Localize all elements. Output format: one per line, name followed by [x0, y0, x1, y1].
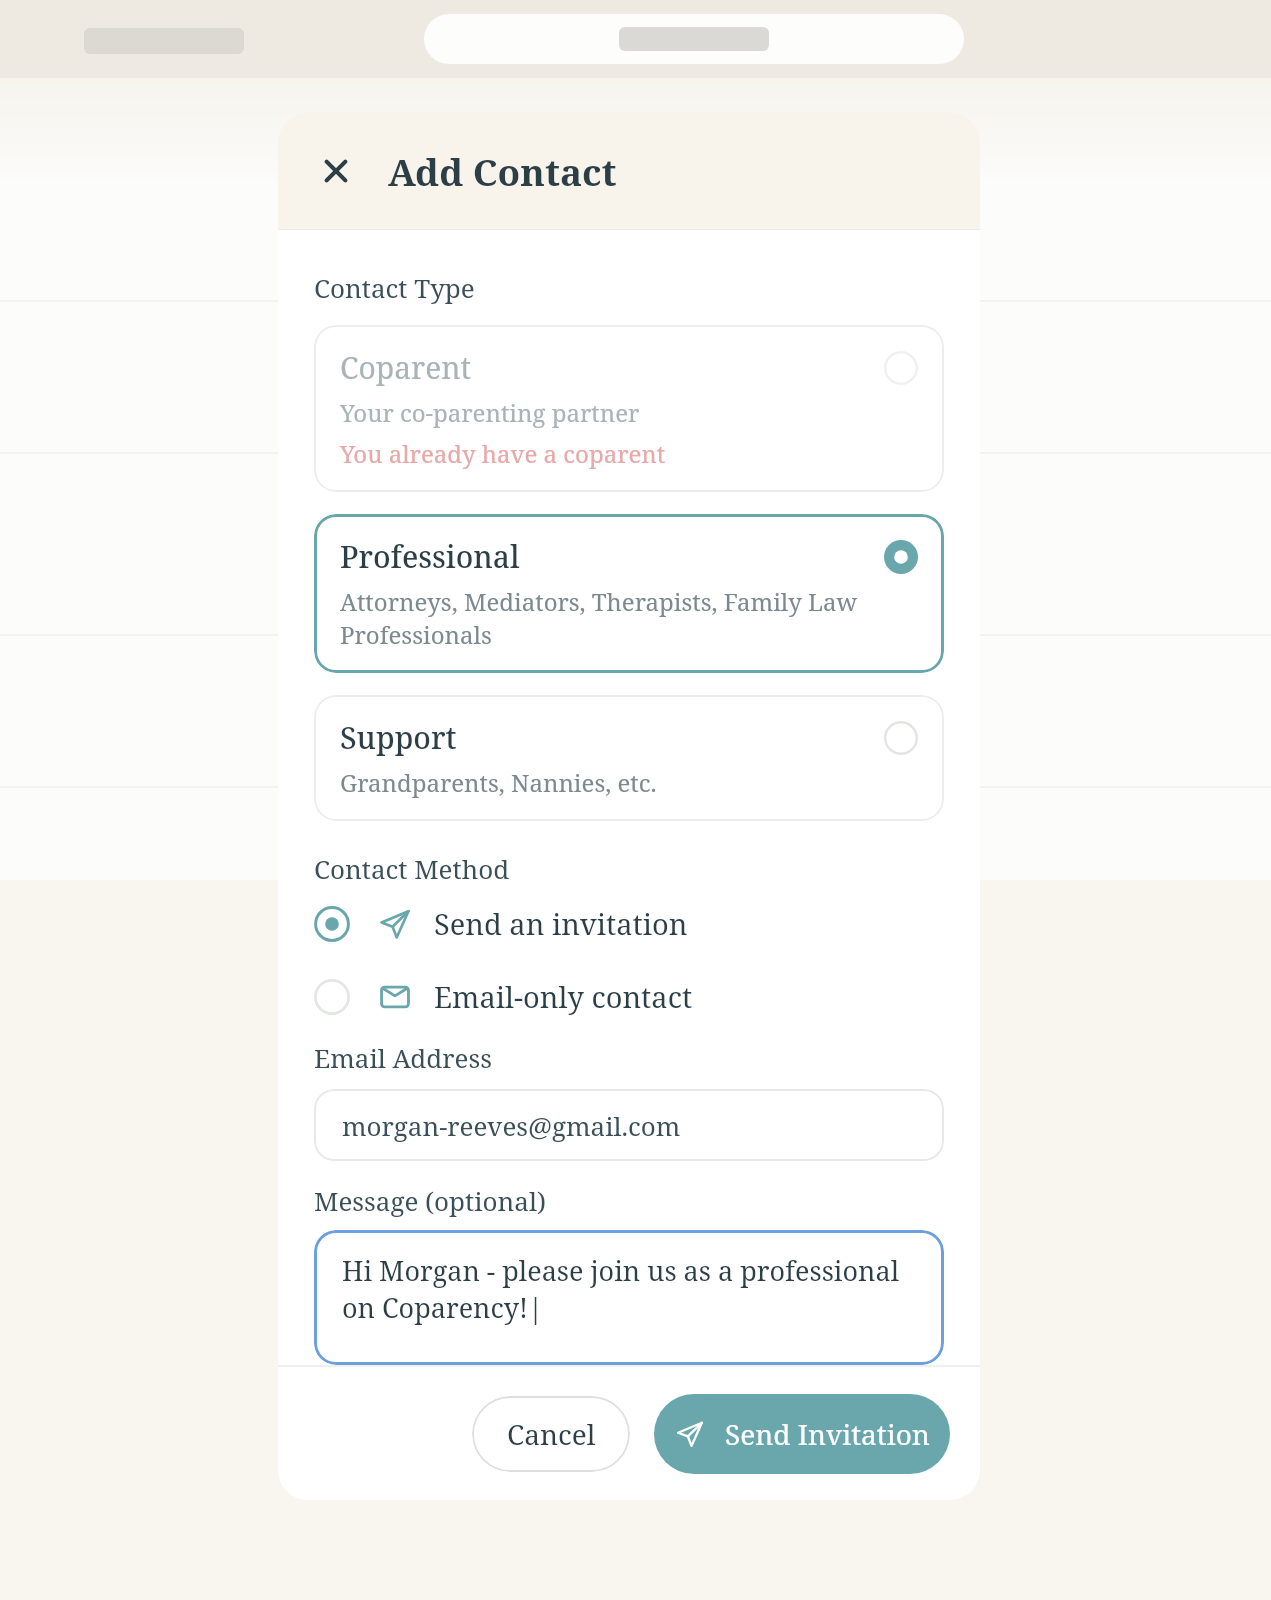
staticText: Hi Morgan - please join us as a professi… [342, 1252, 922, 1326]
staticText: Send Invitation [725, 1415, 930, 1453]
staticText: Attorneys, Mediators, Therapists, Family… [340, 585, 858, 651]
button[interactable]: Send an invitation [314, 896, 944, 951]
button[interactable]: Close [312, 147, 360, 195]
staticText: Professional [340, 536, 520, 577]
staticText: Support [340, 717, 457, 758]
staticText: Contact Method [314, 851, 510, 886]
staticText: Cancel [507, 1415, 596, 1453]
button[interactable]: Email-only contact [314, 969, 944, 1024]
staticText: Coparent [340, 347, 472, 388]
button[interactable]: Professional [314, 514, 944, 673]
staticText: Email-only contact [434, 977, 693, 1016]
button[interactable]: Support [314, 695, 944, 821]
button[interactable]: morgan-reeves@gmail.com [314, 1089, 944, 1161]
button[interactable]: Cancel [472, 1396, 630, 1472]
button[interactable]: Coparent [314, 325, 944, 492]
button[interactable]: Hi Morgan - please join us as a professi… [314, 1230, 944, 1365]
staticText: Message (optional) [314, 1183, 546, 1218]
staticText: You already have a coparent [340, 437, 666, 470]
staticText: morgan-reeves@gmail.com [342, 1108, 681, 1143]
button[interactable]: Send Invitation [654, 1394, 950, 1474]
staticText: Contact Type [314, 270, 475, 305]
staticText: Email Address [314, 1040, 492, 1075]
staticText: Send an invitation [434, 904, 688, 943]
staticText: Add Contact [388, 146, 617, 196]
staticText: Grandparents, Nannies, etc. [340, 766, 657, 799]
staticText: Your co-parenting partner [340, 396, 640, 429]
